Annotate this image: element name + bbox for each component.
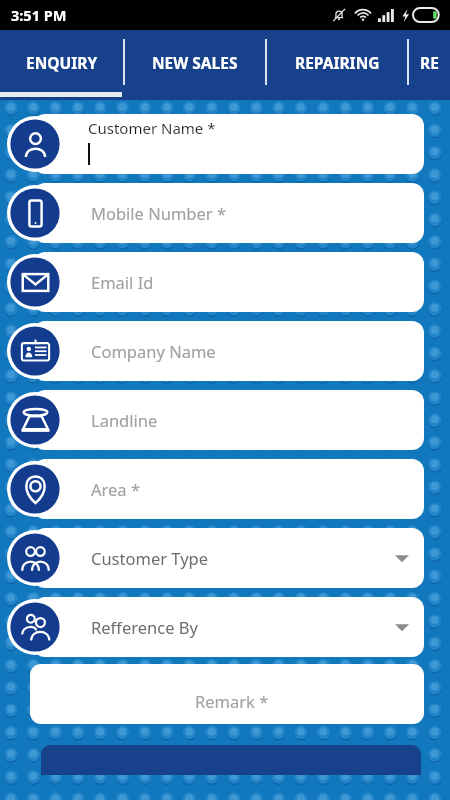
staticText: Mobile Number *	[91, 202, 227, 224]
button[interactable]: ENQUIRY	[0, 30, 123, 100]
staticText: RE	[420, 52, 439, 73]
button[interactable]: Area *	[0, 454, 450, 523]
staticText: Company Name	[91, 340, 216, 362]
button[interactable]: Customer Type	[0, 523, 450, 592]
button[interactable]: Company Name	[0, 316, 450, 385]
staticText: REPAIRING	[295, 52, 380, 73]
button[interactable]: Mobile Number *	[0, 178, 450, 247]
staticText: Customer Type	[91, 547, 209, 569]
staticText: Refference By	[91, 616, 198, 638]
staticText: Landline	[91, 409, 158, 431]
button[interactable]: Customer Name *	[0, 109, 450, 178]
staticText: Customer Name *	[88, 118, 216, 138]
staticText: Remark *	[195, 690, 269, 712]
staticText: Email Id	[91, 271, 154, 293]
button[interactable]: Refference By	[0, 592, 450, 661]
button[interactable]: RE	[409, 30, 450, 100]
button[interactable]: NEW SALES	[125, 30, 265, 100]
button[interactable]: Remark *	[30, 664, 424, 724]
staticText: ENQUIRY	[26, 52, 98, 73]
button[interactable]: Landline	[0, 385, 450, 454]
staticText: NEW SALES	[152, 52, 238, 73]
button[interactable]: REPAIRING	[267, 30, 407, 100]
staticText: Area *	[91, 478, 140, 500]
staticText: 3:51 PM	[11, 5, 67, 25]
button[interactable]: Email Id	[0, 247, 450, 316]
